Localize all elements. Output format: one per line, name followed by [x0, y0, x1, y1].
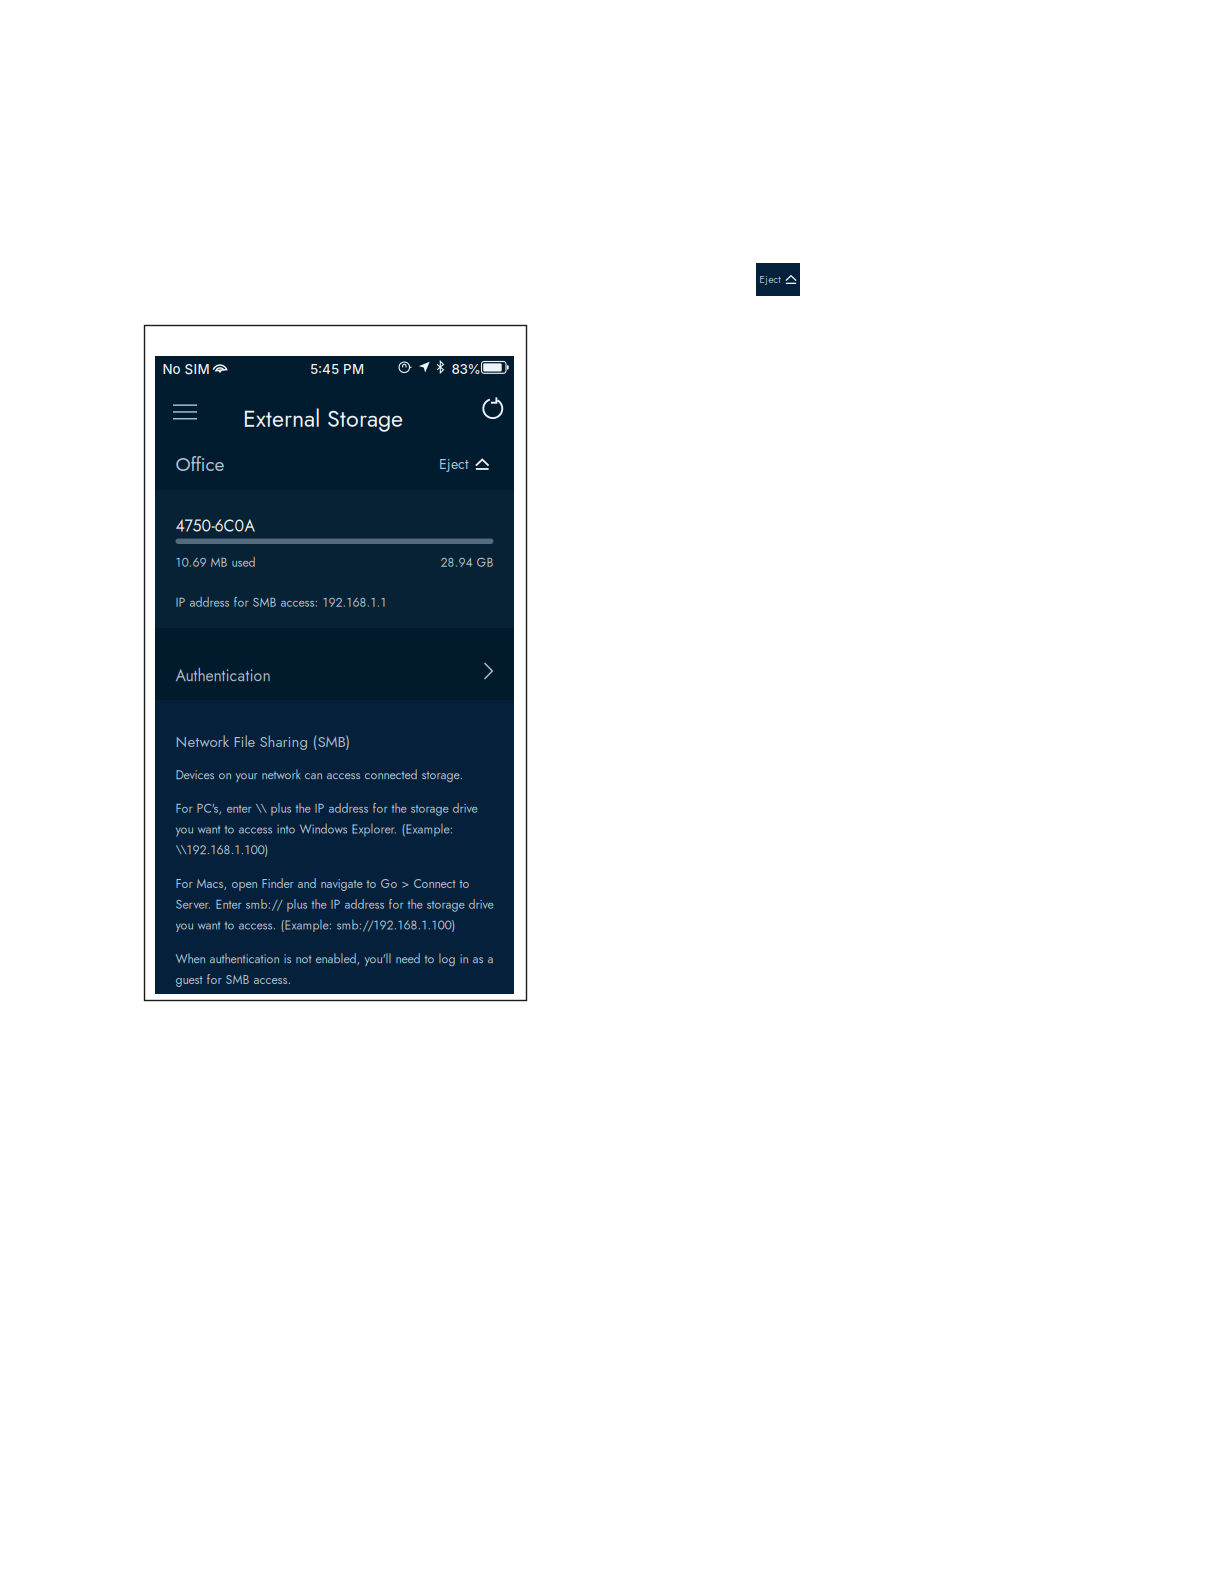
button[interactable]: Authentication	[155, 628, 514, 700]
staticText: Eject	[439, 454, 468, 474]
button[interactable]: Eject	[399, 446, 515, 482]
staticText: Office	[175, 450, 224, 478]
staticText: IP address for SMB access: 192.168.1.1	[175, 593, 386, 611]
staticText: Network File Sharing (SMB)	[175, 731, 350, 753]
button[interactable]: Menu	[160, 390, 210, 434]
staticText: Authentication	[175, 664, 270, 687]
button[interactable]: Refresh	[469, 386, 517, 430]
staticText: No SIM	[162, 361, 209, 377]
staticText: 4750-6C0A	[175, 514, 254, 537]
staticText: 28.94 GB	[440, 553, 493, 571]
staticText: For Macs, open Finder and navigate to Go…	[175, 875, 493, 934]
staticText: 5:45 PM	[310, 361, 364, 377]
staticText: Devices on your network can access conne…	[175, 766, 463, 784]
staticText: External Storage	[243, 402, 403, 435]
staticText: When authentication is not enabled, you'…	[175, 950, 493, 988]
staticText: 10.69 MB used	[175, 553, 255, 571]
staticText: For PC's, enter \⁠\ plus the IP address …	[175, 800, 477, 859]
staticText: 83%	[451, 361, 480, 377]
staticText: Eject	[759, 272, 780, 287]
